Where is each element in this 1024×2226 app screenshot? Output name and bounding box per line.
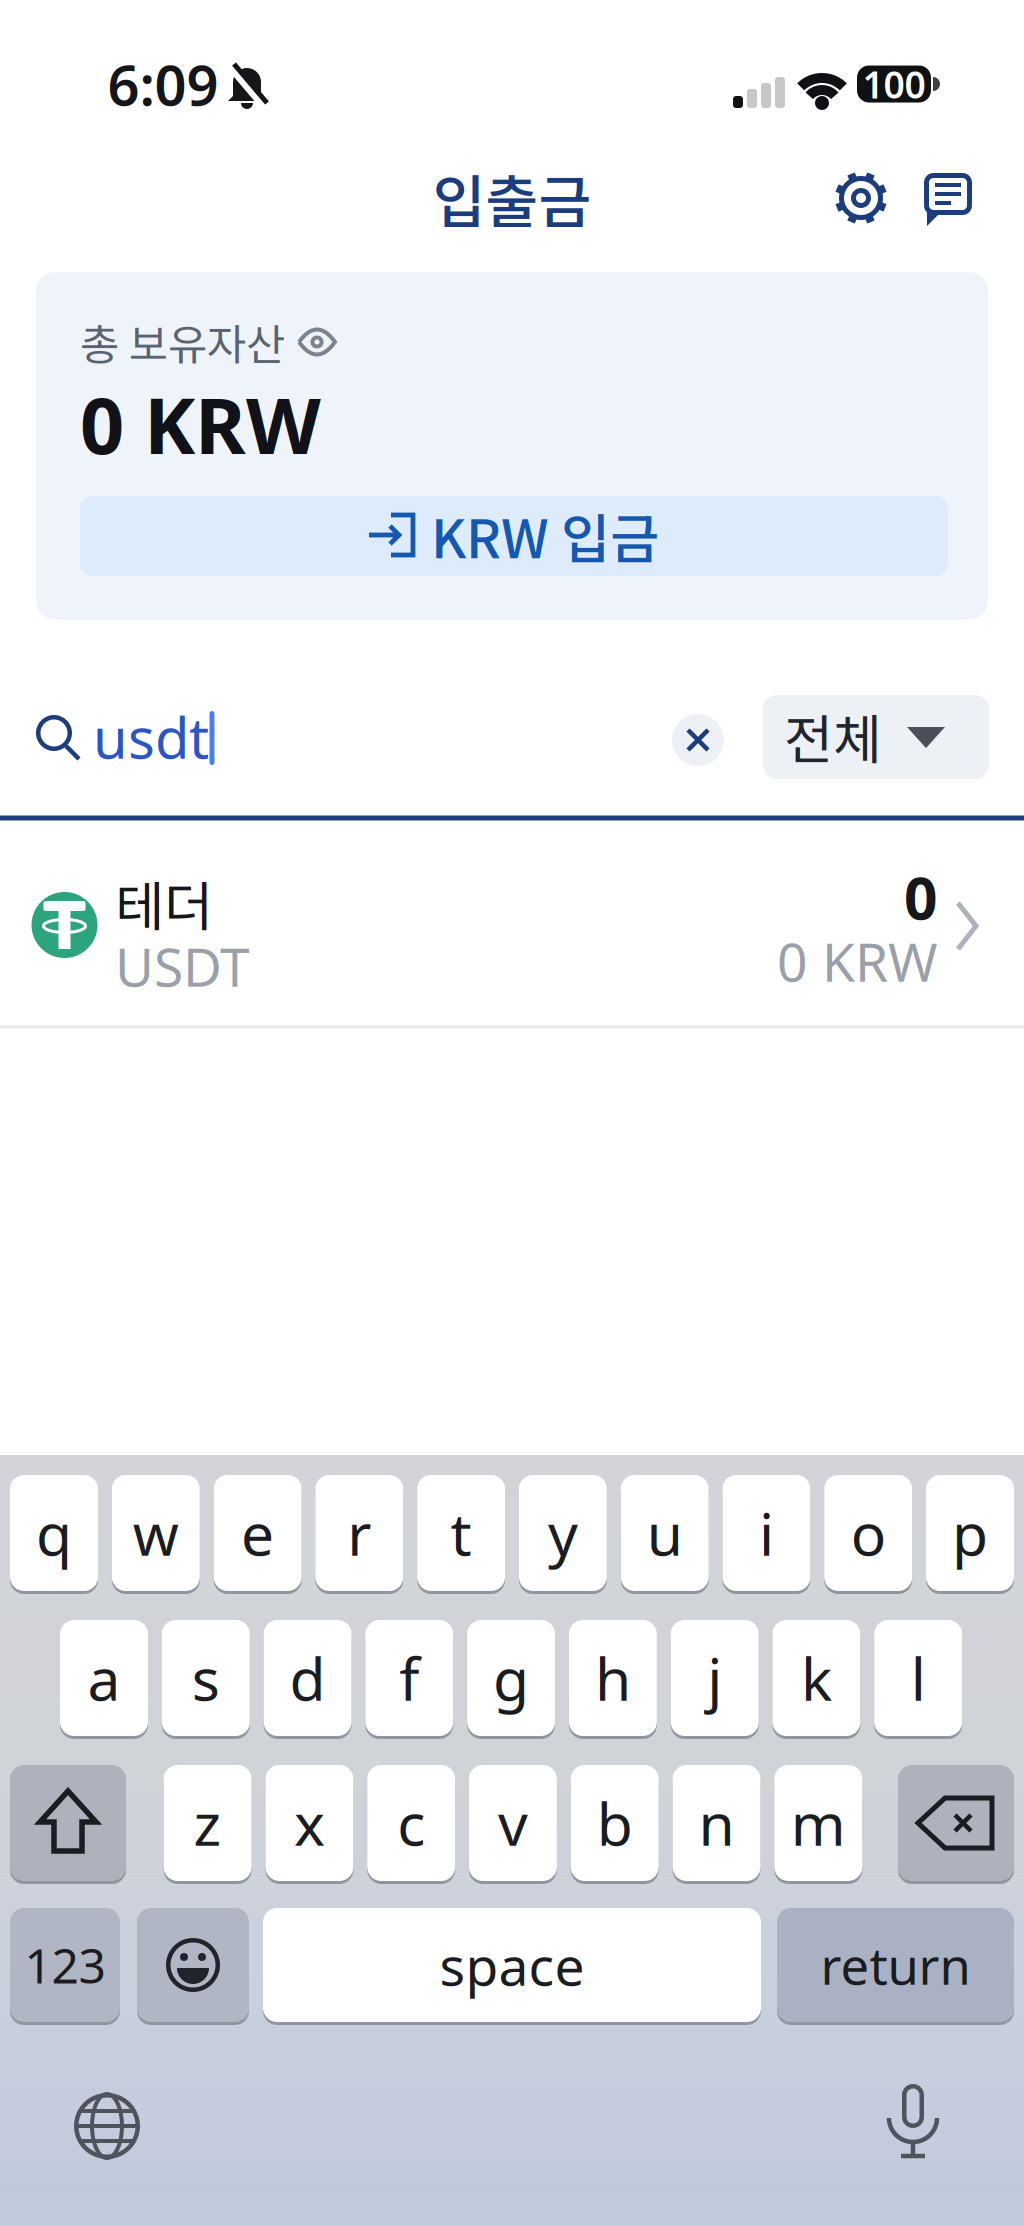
button[interactable]: Shift <box>10 1765 126 1881</box>
button[interactable]: 테더 <box>0 830 1024 1026</box>
button[interactable]: 설정 <box>803 140 919 256</box>
button[interactable]: q <box>10 1475 98 1591</box>
button[interactable]: d <box>264 1620 352 1736</box>
button[interactable]: v <box>469 1765 557 1881</box>
button[interactable]: 다음 키보드 <box>67 2086 147 2166</box>
button[interactable]: h <box>569 1620 657 1736</box>
button[interactable]: s <box>162 1620 250 1736</box>
staticText: s <box>192 1639 220 1717</box>
button[interactable]: k <box>772 1620 860 1736</box>
button[interactable]: m <box>774 1765 862 1881</box>
button[interactable]: 상담 <box>890 140 1006 256</box>
staticText: 전체 <box>784 697 882 775</box>
button[interactable]: 123 <box>10 1908 120 2022</box>
staticText: h <box>595 1639 631 1717</box>
button[interactable]: r <box>315 1475 403 1591</box>
button[interactable]: Delete <box>898 1765 1014 1881</box>
staticText: w <box>133 1494 179 1572</box>
staticText: c <box>397 1784 425 1862</box>
button[interactable]: space <box>263 1908 761 2022</box>
button[interactable]: w <box>112 1475 200 1591</box>
staticText: f <box>399 1639 419 1717</box>
staticText: a <box>87 1639 120 1717</box>
button[interactable]: return <box>777 1908 1014 2022</box>
button[interactable]: t <box>417 1475 505 1591</box>
button[interactable]: c <box>367 1765 455 1881</box>
button[interactable]: j <box>671 1620 759 1736</box>
button[interactable]: y <box>519 1475 607 1591</box>
staticText: 입출금 <box>432 156 591 239</box>
button[interactable]: z <box>164 1765 252 1881</box>
button[interactable]: g <box>467 1620 555 1736</box>
staticText: o <box>851 1494 886 1572</box>
button[interactable]: 잔액 숨기기 <box>299 324 335 360</box>
staticText: 테더 <box>115 864 213 942</box>
button[interactable]: o <box>824 1475 912 1591</box>
staticText: m <box>791 1784 846 1862</box>
button[interactable]: i <box>722 1475 810 1591</box>
staticText: return <box>820 1931 970 1999</box>
staticText: v <box>498 1784 528 1862</box>
staticText: KRW 입금 <box>431 496 659 574</box>
staticText: 100 <box>862 59 925 109</box>
button[interactable]: KRW 입금 <box>80 496 948 576</box>
staticText: z <box>194 1784 222 1862</box>
button[interactable]: 지우기 <box>672 714 724 766</box>
button[interactable]: u <box>621 1475 709 1591</box>
staticText: y <box>548 1494 578 1572</box>
button[interactable]: 이모티콘 <box>137 1908 249 2022</box>
button[interactable]: a <box>60 1620 148 1736</box>
staticText: u <box>647 1494 683 1572</box>
button[interactable]: 받아쓰기 <box>873 2080 953 2160</box>
button[interactable]: e <box>214 1475 302 1591</box>
staticText: q <box>36 1494 72 1572</box>
staticText: d <box>290 1639 326 1717</box>
button[interactable]: l <box>874 1620 962 1736</box>
staticText: USDT <box>115 931 250 1001</box>
staticText: 0 <box>904 858 938 936</box>
button[interactable]: x <box>265 1765 353 1881</box>
button[interactable]: f <box>365 1620 453 1736</box>
staticText: x <box>294 1784 325 1862</box>
staticText: 6:09 <box>107 47 218 121</box>
button[interactable]: n <box>672 1765 760 1881</box>
staticText: 0 KRW <box>777 926 938 996</box>
staticText: 총 보유자산 <box>80 311 285 373</box>
staticText: l <box>911 1639 926 1717</box>
staticText: n <box>698 1784 734 1862</box>
button[interactable]: p <box>926 1475 1014 1591</box>
staticText: t <box>451 1494 472 1572</box>
button[interactable]: usdt <box>0 693 640 783</box>
staticText: i <box>759 1494 774 1572</box>
staticText: 0 KRW <box>80 373 321 475</box>
staticText: usdt <box>93 700 209 774</box>
staticText: 123 <box>24 1933 105 1997</box>
staticText: space <box>439 1930 584 2000</box>
staticText: e <box>241 1494 274 1572</box>
staticText: p <box>952 1494 988 1572</box>
staticText: b <box>597 1784 633 1862</box>
button[interactable]: 전체 <box>763 695 989 779</box>
staticText: j <box>707 1639 722 1717</box>
button[interactable]: b <box>571 1765 659 1881</box>
staticText: k <box>801 1639 832 1717</box>
staticText: r <box>347 1494 371 1572</box>
staticText: g <box>493 1639 529 1717</box>
